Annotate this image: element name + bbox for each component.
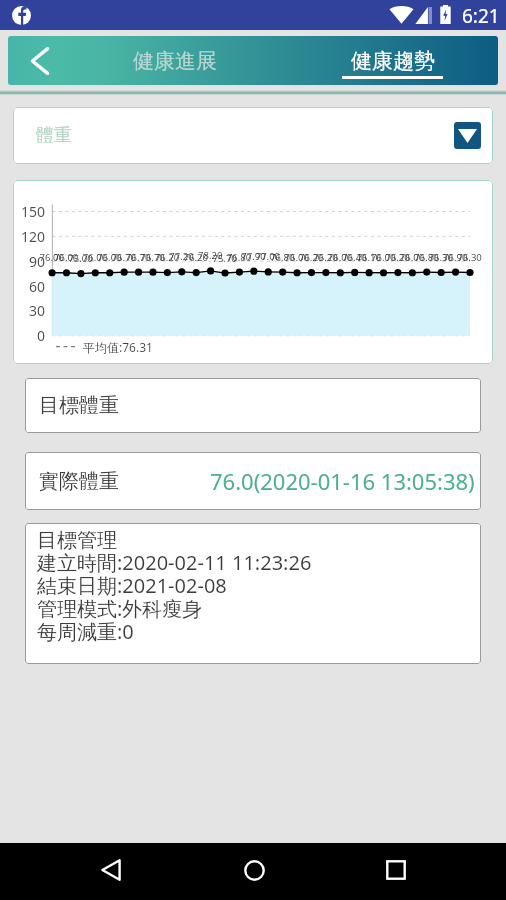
button[interactable]: 目標體重 [25,378,481,433]
staticText: 6:21 [462,3,500,29]
staticText: 76.0(2020-01-16 13:05:38) [210,466,475,496]
button[interactable]: Home [232,848,276,892]
staticText: 體重 [36,124,72,147]
button[interactable]: 目標管理 建立時間:2020-02-11 11:23:26 結束日期:2021-… [25,523,481,664]
staticText: 實際體重 [39,469,119,494]
button[interactable]: Back [8,36,66,85]
staticText: 健康趨勢 [351,48,435,74]
button[interactable]: Recent apps [374,848,418,892]
staticText: 目標體重 [39,393,119,418]
button[interactable]: 體重 [13,107,493,164]
button[interactable]: 健康進展 [66,36,282,85]
button[interactable]: Open dropdown [454,122,481,149]
staticText: 目標管理 建立時間:2020-02-11 11:23:26 結束日期:2021-… [37,528,312,645]
button[interactable]: 健康趨勢 [282,36,498,85]
button[interactable]: Back [89,848,133,892]
staticText: 健康進展 [133,48,217,74]
button[interactable]: 實際體重 [25,452,481,510]
